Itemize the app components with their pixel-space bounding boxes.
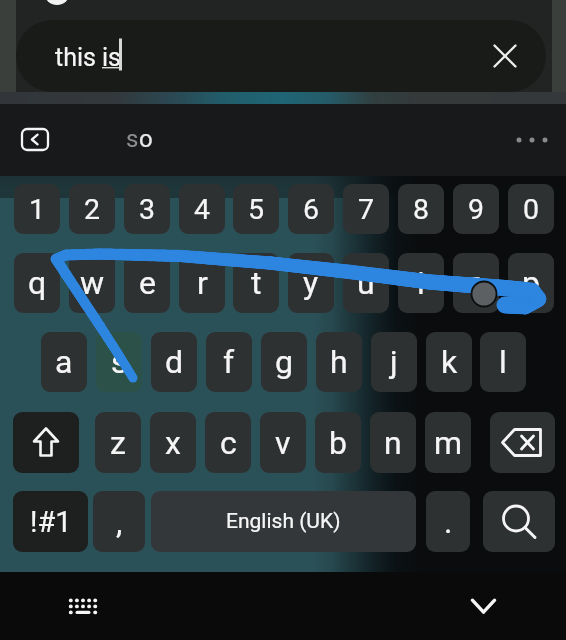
staticText: o: [467, 264, 486, 302]
staticText: 5: [248, 193, 265, 226]
button[interactable]: f: [206, 332, 252, 392]
button[interactable]: Shift: [13, 412, 79, 473]
staticText: x: [165, 424, 181, 462]
button[interactable]: i: [398, 253, 444, 313]
button[interactable]: g: [261, 332, 307, 392]
staticText: s: [126, 125, 139, 153]
staticText: !#1: [30, 505, 72, 539]
button[interactable]: 3: [124, 184, 170, 234]
button[interactable]: l: [480, 332, 526, 392]
button[interactable]: 0: [508, 184, 554, 234]
staticText: .: [444, 503, 453, 541]
button[interactable]: j: [371, 332, 417, 392]
button[interactable]: y: [288, 253, 334, 313]
staticText: 1: [29, 193, 46, 226]
button[interactable]: Clear text: [482, 33, 528, 79]
button[interactable]: 6: [288, 184, 334, 234]
staticText: 7: [358, 193, 375, 226]
button[interactable]: x: [150, 412, 196, 473]
staticText: is: [102, 43, 121, 72]
button[interactable]: o: [453, 253, 499, 313]
button[interactable]: r: [179, 253, 225, 313]
staticText: 0: [523, 193, 540, 226]
staticText: q: [28, 264, 47, 302]
staticText: v: [275, 424, 291, 462]
button[interactable]: w: [69, 253, 115, 313]
button[interactable]: 2: [69, 184, 115, 234]
staticText: u: [357, 264, 375, 302]
button[interactable]: s: [96, 332, 142, 392]
staticText: s: [111, 343, 128, 381]
button[interactable]: Hide keyboard: [462, 586, 506, 626]
staticText: w: [80, 264, 105, 302]
staticText: r: [197, 264, 208, 302]
staticText: English (UK): [226, 509, 341, 534]
button[interactable]: e: [124, 253, 170, 313]
staticText: m: [434, 424, 463, 462]
button[interactable]: u: [343, 253, 389, 313]
staticText: k: [441, 343, 458, 381]
staticText: d: [165, 343, 184, 381]
staticText: a: [55, 343, 73, 381]
staticText: l: [499, 343, 507, 381]
button[interactable]: 5: [233, 184, 279, 234]
staticText: 9: [468, 193, 485, 226]
staticText: o: [139, 125, 153, 153]
staticText: z: [110, 424, 126, 462]
button[interactable]: 7: [343, 184, 389, 234]
staticText: 3: [139, 193, 156, 226]
button[interactable]: 9: [453, 184, 499, 234]
staticText: 8: [413, 193, 430, 226]
button[interactable]: z: [95, 412, 141, 473]
staticText: h: [330, 343, 348, 381]
staticText: c: [220, 424, 237, 462]
staticText: p: [522, 264, 540, 302]
button[interactable]: h: [316, 332, 362, 392]
staticText: j: [390, 343, 398, 381]
button[interactable]: Previous suggestions: [22, 129, 48, 150]
staticText: this: [55, 43, 103, 72]
button[interactable]: .: [426, 491, 470, 552]
button[interactable]: v: [260, 412, 306, 473]
button[interactable]: m: [425, 412, 471, 473]
staticText: 2: [84, 193, 101, 226]
staticText: 4: [194, 193, 211, 226]
button[interactable]: q: [14, 253, 60, 313]
staticText: e: [139, 264, 156, 302]
button[interactable]: k: [426, 332, 472, 392]
button[interactable]: a: [41, 332, 87, 392]
staticText: t: [251, 264, 262, 302]
button[interactable]: 8: [398, 184, 444, 234]
button[interactable]: d: [151, 332, 197, 392]
button[interactable]: !#1: [13, 491, 88, 552]
staticText: i: [417, 264, 425, 302]
button[interactable]: p: [508, 253, 554, 313]
button[interactable]: Backspace: [490, 412, 555, 473]
staticText: f: [223, 343, 235, 381]
staticText: ,: [116, 503, 123, 541]
button[interactable]: this: [16, 20, 546, 92]
button[interactable]: 1: [14, 184, 60, 234]
button[interactable]: English (UK): [151, 491, 416, 552]
staticText: b: [329, 424, 347, 462]
button[interactable]: ,: [93, 491, 145, 552]
button[interactable]: More options: [512, 128, 554, 152]
staticText: 6: [303, 193, 320, 226]
button[interactable]: Search: [483, 491, 555, 552]
button[interactable]: n: [370, 412, 416, 473]
staticText: g: [275, 343, 293, 381]
button[interactable]: 4: [179, 184, 225, 234]
button[interactable]: Switch keyboard: [59, 586, 107, 626]
staticText: y: [303, 264, 319, 302]
button[interactable]: c: [205, 412, 251, 473]
staticText: n: [384, 424, 402, 462]
button[interactable]: t: [233, 253, 279, 313]
button[interactable]: b: [315, 412, 361, 473]
